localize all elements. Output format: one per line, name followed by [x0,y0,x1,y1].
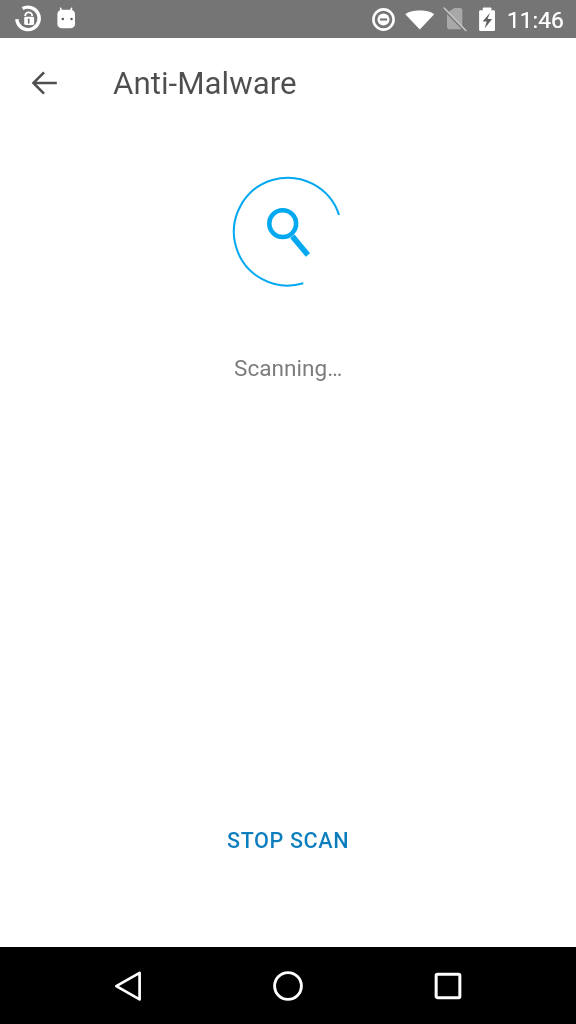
button[interactable]: Home [242,947,334,1024]
staticText: Anti-Malware [113,65,297,102]
button[interactable]: Recent apps [402,947,494,1024]
staticText: 11:46 [507,7,564,34]
button[interactable]: STOP SCAN [213,817,364,864]
button[interactable]: Navigate up [22,60,67,105]
staticText: Scanning… [234,355,343,381]
staticText: STOP SCAN [227,828,350,853]
button[interactable]: Back [82,947,174,1024]
